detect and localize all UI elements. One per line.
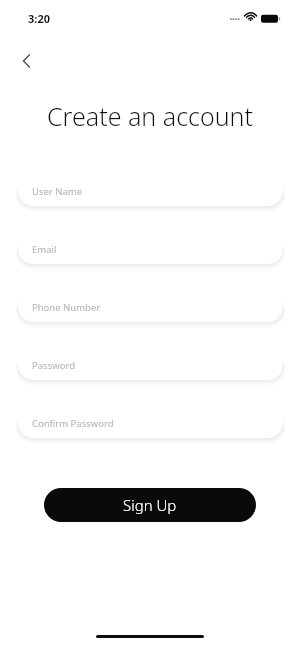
button[interactable]: Back bbox=[10, 44, 44, 78]
staticText: Confirm Password bbox=[32, 417, 114, 430]
button[interactable]: Email bbox=[18, 234, 283, 264]
staticText: User Name bbox=[32, 185, 83, 198]
staticText: Phone Number bbox=[32, 301, 101, 314]
button[interactable]: Password bbox=[18, 350, 283, 380]
staticText: Create an account bbox=[47, 99, 253, 133]
staticText: 3:20 bbox=[28, 11, 50, 26]
staticText: Sign Up bbox=[123, 495, 177, 515]
button[interactable]: Sign Up bbox=[44, 488, 256, 522]
button[interactable]: User Name bbox=[18, 176, 283, 206]
button[interactable]: Phone Number bbox=[18, 292, 283, 322]
button[interactable]: Confirm Password bbox=[18, 408, 283, 438]
staticText: Email bbox=[32, 243, 57, 256]
staticText: Password bbox=[32, 359, 75, 372]
